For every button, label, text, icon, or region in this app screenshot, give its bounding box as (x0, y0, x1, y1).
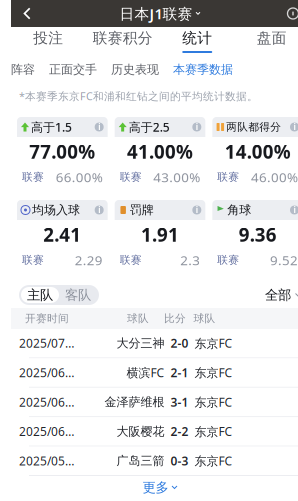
button[interactable]: 统计 (160, 27, 234, 57)
staticText: 2.3 (180, 251, 200, 269)
staticText: 东京FC (194, 423, 232, 439)
button[interactable]: 联赛积分 (85, 27, 160, 57)
button[interactable]: 盘面 (234, 27, 298, 57)
staticText: 正面交手 (49, 62, 97, 77)
button[interactable]: 2025/07/16 (11, 329, 298, 358)
staticText: 日本J1联赛 (119, 4, 192, 23)
staticText: i (293, 205, 295, 215)
staticText: 46.00% (251, 168, 298, 186)
staticText: 联赛 (120, 170, 142, 183)
staticText: 联赛 (120, 253, 142, 266)
staticText: 2.29 (75, 251, 103, 269)
button[interactable]: 2025/06/14 (11, 417, 298, 447)
staticText: 0-3 (170, 453, 188, 469)
staticText: 投注 (33, 29, 63, 47)
staticText: 角球 (227, 203, 251, 217)
staticText: 9.52 (270, 251, 298, 269)
button[interactable]: 主队 (21, 287, 59, 303)
staticText: 联赛 (22, 253, 44, 266)
staticText: 2025/05/25 (19, 453, 75, 469)
staticText: 主队 (27, 287, 53, 303)
staticText: 本赛季数据 (173, 62, 233, 77)
staticText: 14.00% (225, 139, 291, 164)
staticText: 2025/07/16 (19, 335, 75, 351)
staticText: 2-2 (170, 423, 188, 439)
staticText: 东京FC (194, 365, 232, 380)
button[interactable]: 返回 (15, 0, 39, 27)
staticText: 均场入球 (32, 203, 80, 217)
button[interactable]: 历史表现 (104, 57, 166, 82)
staticText: 球队 (193, 312, 215, 325)
button[interactable]: 更多 (11, 476, 298, 499)
staticText: 球队 (127, 312, 149, 325)
staticText: 77.00% (29, 139, 95, 164)
button[interactable]: 阵容 (4, 57, 42, 82)
staticText: 联赛积分 (93, 29, 153, 47)
staticText: 9.36 (239, 222, 277, 247)
staticText: 大阪樱花 (116, 424, 164, 439)
staticText: 开赛时间 (25, 312, 69, 325)
staticText: 客队 (65, 287, 91, 303)
staticText: 历史表现 (111, 62, 159, 77)
staticText: 比分 (164, 312, 186, 325)
staticText: 2025/06/28 (19, 365, 75, 380)
staticText: 东京FC (194, 335, 232, 351)
staticText: 盘面 (257, 29, 287, 47)
staticText: 东京FC (194, 394, 232, 410)
staticText: i (98, 205, 100, 215)
staticText: i (196, 122, 198, 132)
button[interactable]: 刷新 (281, 0, 298, 27)
staticText: 统计 (182, 29, 212, 47)
staticText: 高于1.5 (31, 119, 72, 135)
staticText: i (293, 122, 295, 132)
staticText: 1.91 (141, 222, 179, 247)
staticText: 3-1 (170, 394, 188, 410)
staticText: 66.00% (56, 168, 103, 186)
staticText: 联赛 (22, 170, 44, 183)
staticText: 更多 (142, 479, 168, 496)
staticText: 联赛 (217, 253, 239, 266)
button[interactable]: 正面交手 (42, 57, 104, 82)
staticText: 43.00% (153, 168, 200, 186)
staticText: 联赛 (217, 170, 239, 183)
staticText: 东京FC (194, 453, 232, 469)
staticText: 全部 (265, 287, 291, 303)
staticText: 2025/06/14 (19, 423, 75, 439)
staticText: 金泽萨维根 (104, 395, 164, 409)
button[interactable]: 2025/06/28 (11, 358, 298, 388)
button[interactable]: 投注 (11, 27, 85, 57)
staticText: i (196, 205, 198, 215)
button[interactable]: 客队 (59, 287, 97, 303)
staticText: 2.41 (43, 222, 81, 247)
staticText: 广岛三箭 (116, 453, 164, 468)
staticText: 阵容 (11, 62, 35, 77)
staticText: 2025/06/18 (19, 394, 75, 410)
button[interactable]: 2025/05/25 (11, 447, 298, 476)
staticText: 横滨FC (126, 365, 164, 380)
button[interactable]: 全部 (265, 282, 298, 308)
staticText: 两队都得分 (226, 120, 281, 133)
staticText: 大分三神 (116, 336, 164, 350)
staticText: 2-0 (170, 335, 188, 351)
staticText: i (98, 122, 100, 132)
staticText: 罚牌 (130, 203, 154, 217)
button[interactable]: 本赛季数据 (166, 57, 240, 82)
staticText: 高于2.5 (129, 119, 170, 135)
staticText: 41.00% (127, 139, 193, 164)
staticText: *本赛季东京FC和浦和红钻之间的平均统计数据。 (19, 89, 258, 103)
staticText: 2-1 (170, 365, 188, 380)
button[interactable]: 2025/06/18 (11, 388, 298, 417)
